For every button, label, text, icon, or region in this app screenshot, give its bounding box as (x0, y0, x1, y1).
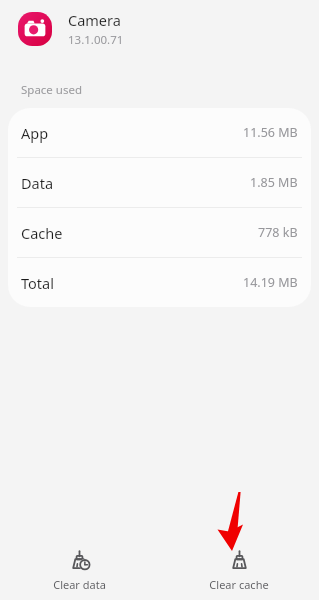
staticText: 14.19 MB (243, 274, 298, 291)
other: Clear data (69, 550, 90, 571)
staticText: 1.85 MB (250, 174, 298, 191)
staticText: Space used (21, 82, 83, 98)
button[interactable]: Cache (8, 208, 311, 257)
button[interactable]: Total (8, 258, 311, 307)
staticText: Data (21, 173, 54, 193)
staticText: App (21, 123, 49, 143)
button[interactable]: Clear data (0, 544, 159, 598)
button[interactable]: Data (8, 158, 311, 207)
button[interactable]: App (8, 108, 311, 157)
staticText: 11.56 MB (243, 124, 298, 141)
staticText: Clear data (53, 577, 106, 592)
staticText: Clear cache (209, 577, 269, 592)
button[interactable]: Camera (0, 0, 319, 58)
staticText: Cache (21, 223, 63, 243)
button[interactable]: Clear cache (159, 544, 319, 598)
staticText: Camera (68, 10, 121, 30)
other: Clear cache (229, 550, 250, 571)
staticText: 13.1.00.71 (68, 32, 124, 48)
staticText: 778 kB (258, 224, 298, 241)
staticText: Total (21, 273, 54, 293)
